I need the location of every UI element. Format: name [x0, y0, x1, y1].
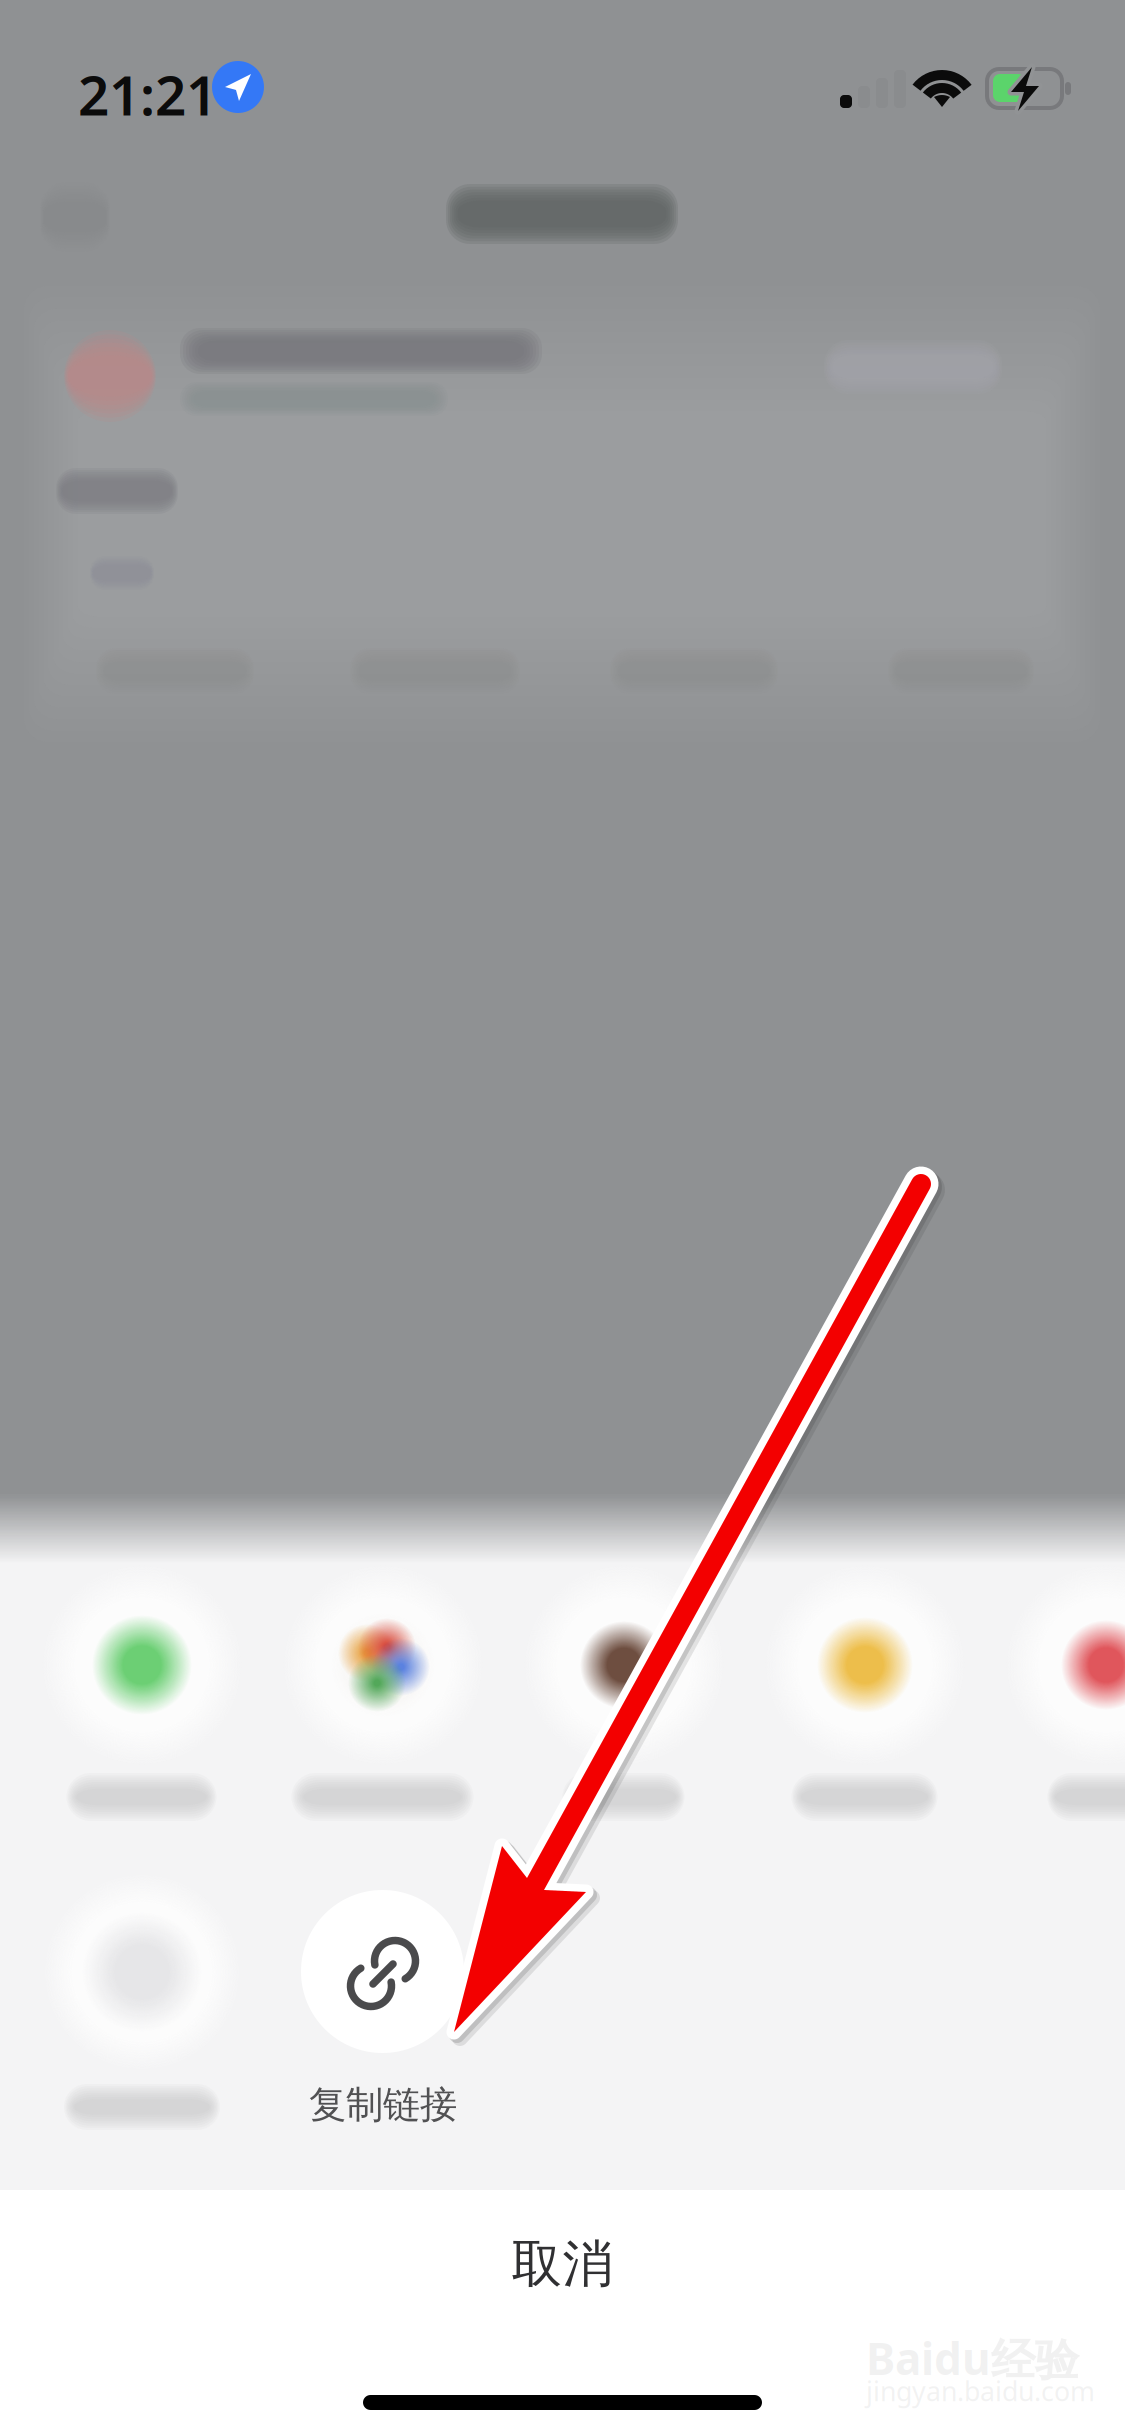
staticText: 21:21 — [78, 58, 217, 131]
button[interactable]: Share target 2 — [301, 1583, 464, 1833]
button[interactable]: 取消 — [0, 2190, 1125, 2348]
button[interactable]: Share target 5 — [1024, 1583, 1125, 1833]
staticText: Baidu经验 — [866, 2329, 1079, 2387]
button[interactable]: Share target 4 — [783, 1583, 946, 1833]
button[interactable]: Share target 6 — [60, 1890, 223, 2140]
staticText: 复制链接 — [309, 2082, 457, 2128]
button[interactable]: 复制链接 — [301, 1890, 464, 2140]
button[interactable]: Share target 1 — [60, 1583, 223, 1833]
button[interactable]: Share target 3 — [542, 1583, 705, 1833]
staticText: 取消 — [511, 2233, 613, 2295]
staticText: jingyan.baidu.com — [866, 2373, 1095, 2409]
